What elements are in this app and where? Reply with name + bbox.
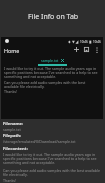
button[interactable]: sample.txt — [41, 58, 64, 63]
staticText: Can you please add audio samples with th… — [3, 168, 102, 177]
button[interactable]: Save — [82, 45, 91, 54]
staticText: sample.txt — [3, 127, 21, 132]
button[interactable]: New tab — [72, 45, 81, 54]
staticText: File Info on Tab — [28, 12, 79, 22]
staticText: Thanks! — [4, 89, 18, 94]
staticText: sample.txt — [41, 58, 59, 63]
staticText: Can you please add audio samples with th… — [4, 80, 100, 89]
staticText: Thanks! — [3, 178, 17, 183]
staticText: Filecontent: — [3, 146, 28, 152]
button[interactable]: More options — [92, 45, 101, 54]
staticText: Home — [4, 47, 20, 54]
staticText: I would like to try it out. The sample a… — [3, 152, 102, 165]
staticText: /storage/emulated/0/Download/sample.txt — [3, 139, 76, 144]
staticText: Filename: — [3, 121, 24, 127]
staticText: 10:46 — [80, 40, 88, 44]
staticText: 10:46 — [93, 40, 101, 44]
staticText: I would like to try it out. The sample a… — [4, 66, 100, 79]
staticText: Filepath: — [3, 133, 22, 139]
